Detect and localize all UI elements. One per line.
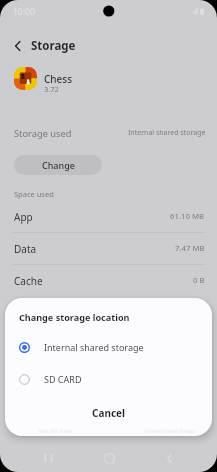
staticText: Internal shared storage bbox=[44, 341, 144, 353]
staticText: App bbox=[14, 210, 33, 224]
staticText: 61.10 MB bbox=[170, 211, 205, 222]
staticText: Cache bbox=[14, 274, 43, 288]
button[interactable]: App bbox=[0, 201, 217, 233]
staticText: SD CARD bbox=[44, 373, 82, 385]
staticText: Cancel bbox=[92, 406, 126, 420]
staticText: Change bbox=[42, 159, 75, 171]
staticText: 0 B bbox=[193, 275, 205, 286]
staticText: 7.47 MB bbox=[175, 243, 205, 254]
button[interactable]: Internal shared storage bbox=[5, 331, 212, 363]
button[interactable]: Cache bbox=[0, 265, 217, 297]
staticText: 3.72 bbox=[44, 84, 59, 94]
button[interactable]: Change bbox=[14, 155, 102, 175]
button[interactable]: SD CARD bbox=[5, 363, 212, 395]
staticText: Storage bbox=[31, 38, 76, 54]
staticText: Total size of app bbox=[38, 428, 73, 434]
staticText: Change storage location bbox=[19, 311, 130, 323]
staticText: Internal shared storage bbox=[145, 428, 195, 434]
staticText: Chess bbox=[44, 72, 73, 86]
staticText: Internal shared storage bbox=[128, 128, 206, 138]
staticText: 10:00 bbox=[13, 6, 35, 18]
staticText: Space used bbox=[14, 189, 54, 199]
button[interactable]: Data bbox=[0, 233, 217, 265]
staticText: Data bbox=[14, 242, 37, 256]
button[interactable]: Navigate up bbox=[9, 37, 27, 55]
button[interactable]: Cancel bbox=[5, 399, 212, 427]
staticText: Storage used bbox=[14, 127, 72, 140]
